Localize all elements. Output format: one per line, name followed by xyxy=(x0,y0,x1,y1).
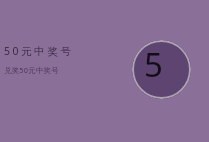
staticText: 50元中奖号 xyxy=(4,44,74,58)
button[interactable]: Countdown 5 seconds xyxy=(132,40,191,99)
staticText: 兑奖50元中奖号 xyxy=(4,65,59,75)
button[interactable]: 50元中奖号 xyxy=(0,39,209,103)
staticText: 5 xyxy=(144,42,163,87)
